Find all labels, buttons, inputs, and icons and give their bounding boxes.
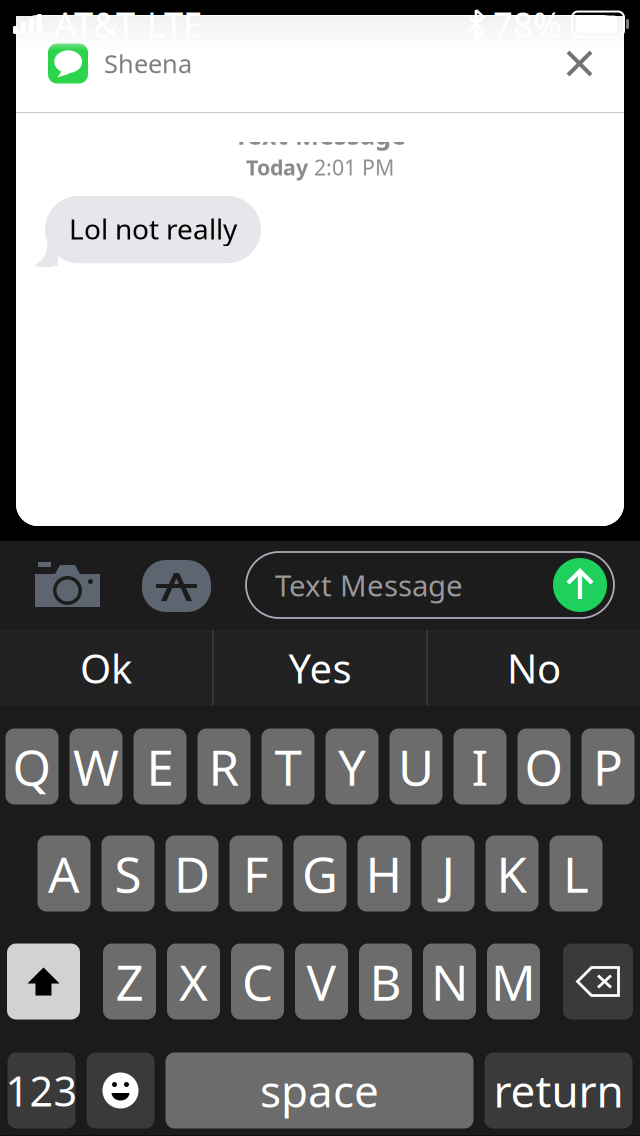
button[interactable]: S: [101, 835, 154, 911]
staticText: 78%: [493, 1, 562, 47]
staticText: K: [496, 841, 527, 906]
button[interactable]: return: [484, 1052, 632, 1128]
staticText: Z: [115, 949, 143, 1014]
button[interactable]: Q: [5, 728, 58, 804]
staticText: AT&T: [54, 1, 135, 47]
staticText: Sheena: [104, 47, 192, 80]
staticText: E: [146, 734, 173, 799]
button[interactable]: Shift: [7, 943, 80, 1019]
staticText: H: [365, 841, 402, 906]
staticText: D: [174, 841, 210, 906]
button[interactable]: Apps: [142, 560, 211, 612]
button[interactable]: Yes: [214, 630, 426, 706]
button[interactable]: space: [165, 1052, 473, 1128]
staticText: Text Message: [275, 565, 463, 604]
staticText: Y: [338, 734, 366, 799]
button[interactable]: K: [485, 835, 538, 911]
button[interactable]: A: [37, 835, 90, 911]
staticText: L: [563, 841, 589, 906]
button[interactable]: L: [549, 835, 602, 911]
staticText: G: [302, 841, 338, 906]
button[interactable]: Emoji: [86, 1052, 154, 1128]
staticText: B: [369, 949, 401, 1014]
staticText: R: [208, 734, 239, 799]
button[interactable]: D: [165, 835, 218, 911]
button[interactable]: C: [231, 943, 284, 1019]
staticText: P: [593, 734, 623, 799]
button[interactable]: J: [421, 835, 474, 911]
staticText: N: [431, 949, 468, 1014]
button[interactable]: G: [293, 835, 346, 911]
staticText: U: [398, 734, 434, 799]
staticText: 123: [5, 1063, 77, 1118]
staticText: O: [524, 734, 563, 799]
staticText: A: [48, 841, 80, 906]
staticText: space: [260, 1061, 379, 1120]
staticText: No: [507, 641, 561, 694]
staticText: M: [491, 949, 536, 1014]
button[interactable]: P: [581, 728, 634, 804]
button[interactable]: Close: [567, 51, 592, 76]
button[interactable]: X: [167, 943, 220, 1019]
button[interactable]: U: [389, 728, 442, 804]
staticText: F: [243, 841, 269, 906]
staticText: S: [114, 841, 141, 906]
staticText: T: [274, 734, 301, 799]
staticText: Today: [246, 153, 308, 181]
staticText: I: [471, 734, 488, 799]
button[interactable]: 123: [7, 1052, 75, 1128]
button[interactable]: Ok: [0, 630, 212, 706]
button[interactable]: Delete: [563, 943, 633, 1019]
staticText: V: [306, 949, 336, 1014]
staticText: Text Message: [234, 118, 406, 152]
staticText: LTE: [147, 1, 202, 47]
button[interactable]: R: [197, 728, 250, 804]
staticText: J: [441, 841, 454, 906]
button[interactable]: M: [487, 943, 540, 1019]
button[interactable]: W: [69, 728, 122, 804]
button[interactable]: N: [423, 943, 476, 1019]
button[interactable]: B: [359, 943, 412, 1019]
button[interactable]: I: [453, 728, 506, 804]
staticText: Q: [12, 734, 51, 799]
button[interactable]: Z: [103, 943, 156, 1019]
button[interactable]: Text Message: [246, 552, 614, 618]
button[interactable]: Y: [325, 728, 378, 804]
staticText: return: [493, 1061, 623, 1120]
button[interactable]: T: [261, 728, 314, 804]
staticText: 2:01 PM: [308, 153, 394, 181]
staticText: C: [242, 949, 273, 1014]
button[interactable]: V: [295, 943, 348, 1019]
button[interactable]: H: [357, 835, 410, 911]
button[interactable]: O: [517, 728, 570, 804]
staticText: Ok: [80, 641, 132, 694]
staticText: Yes: [288, 641, 351, 694]
staticText: W: [73, 734, 119, 799]
button[interactable]: No: [428, 630, 640, 706]
button[interactable]: Camera: [35, 562, 100, 607]
staticText: X: [179, 949, 208, 1014]
button[interactable]: E: [133, 728, 186, 804]
staticText: Lol not really: [69, 210, 237, 247]
button[interactable]: F: [229, 835, 282, 911]
